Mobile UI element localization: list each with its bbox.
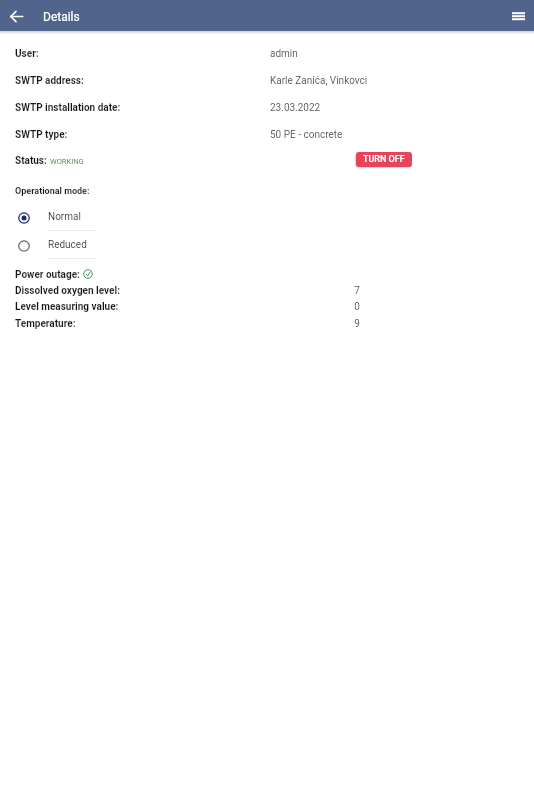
staticText: 23.03.2022 <box>270 102 321 114</box>
staticText: TURN OFF <box>363 154 405 165</box>
staticText: 7 <box>354 285 360 297</box>
staticText: 0 <box>354 301 360 313</box>
staticText: User: <box>15 48 39 60</box>
staticText: WORKING <box>50 157 84 166</box>
button[interactable]: TURN OFF <box>356 152 412 167</box>
staticText: 9 <box>354 318 360 330</box>
staticText: SWTP type: <box>15 129 68 141</box>
staticText: 50 PE - concrete <box>270 129 343 141</box>
staticText: Karle Zanića, Vinkovci <box>270 75 368 87</box>
button[interactable]: Back <box>2 2 30 30</box>
staticText: Details <box>43 10 80 24</box>
button[interactable]: Reduced <box>0 236 534 259</box>
button[interactable]: Normal <box>0 208 534 231</box>
staticText: admin <box>270 48 298 60</box>
staticText: Reduced <box>48 239 87 251</box>
staticText: Power outage: <box>15 269 80 281</box>
staticText: SWTP address: <box>15 75 84 87</box>
staticText: Dissolved oxygen level: <box>15 285 120 297</box>
staticText: Temperature: <box>15 318 76 330</box>
staticText: Normal <box>48 211 81 223</box>
staticText: Operational mode: <box>15 186 90 197</box>
staticText: Level measuring value: <box>15 301 119 313</box>
staticText: Status: <box>15 155 47 167</box>
button[interactable]: Menu <box>504 2 532 30</box>
staticText: SWTP installation date: <box>15 102 121 114</box>
